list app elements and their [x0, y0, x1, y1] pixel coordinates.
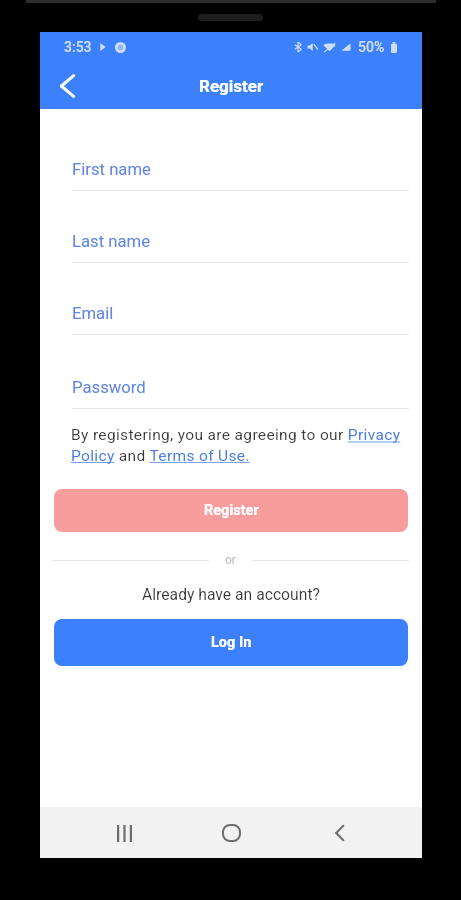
staticText: Register	[199, 76, 264, 96]
staticText: First name	[72, 160, 151, 180]
staticText: Already have an account?	[40, 585, 422, 603]
staticText: By registering, you are agreeing to our …	[71, 426, 409, 465]
button[interactable]: Log In	[54, 619, 408, 666]
button[interactable]: Home	[207, 809, 255, 857]
staticText: Register	[204, 502, 259, 519]
staticText: 50%	[358, 39, 385, 55]
staticText: Password	[72, 378, 146, 398]
button[interactable]: Register	[54, 489, 408, 532]
button[interactable]: Back	[40, 62, 87, 109]
staticText: or	[225, 553, 236, 567]
staticText: Log In	[211, 634, 252, 651]
staticText: Email	[72, 304, 114, 324]
button[interactable]: Back	[315, 809, 363, 857]
staticText: 3:53	[64, 39, 92, 55]
button[interactable]: Recent apps	[100, 809, 148, 857]
staticText: Last name	[72, 232, 151, 252]
